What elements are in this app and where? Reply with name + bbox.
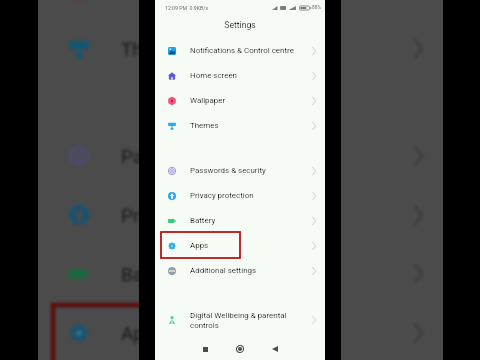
button[interactable]: Apps — [155, 233, 325, 258]
button[interactable]: Privacy protection — [155, 183, 325, 208]
button[interactable]: Themes — [38, 19, 443, 78]
staticText: Wallpaper — [190, 96, 226, 105]
button[interactable]: Digital Wellbeing & parental controls — [155, 304, 325, 336]
staticText: 88% — [312, 5, 321, 11]
button[interactable]: Battery — [38, 244, 443, 303]
staticText: Themes — [121, 38, 190, 60]
button[interactable]: Home screen — [155, 63, 325, 88]
button[interactable]: Passwords & security — [155, 158, 325, 183]
staticText: Additional settings — [190, 266, 257, 275]
staticText: Apps — [121, 322, 165, 344]
button[interactable]: Wallpaper — [38, 0, 443, 19]
staticText: Wallpaper — [121, 0, 205, 1]
button[interactable]: Notifications & Control centre — [155, 38, 325, 63]
staticText: Notifications & Control centre — [190, 46, 294, 55]
button[interactable]: Back — [266, 340, 284, 358]
staticText: Themes — [190, 121, 219, 130]
staticText: Privacy protection — [190, 191, 254, 200]
button[interactable]: Apps — [38, 303, 443, 360]
button[interactable]: Wallpaper — [155, 88, 325, 113]
staticText: Privacy protection — [121, 204, 273, 226]
staticText: 12:09 PM 0.9KB/s — [165, 5, 209, 11]
staticText: Apps — [190, 241, 209, 250]
staticText: Digital Wellbeing & parental controls — [190, 311, 287, 330]
staticText: Passwords & security — [190, 166, 266, 175]
staticText: Passwords & security — [121, 145, 302, 167]
button[interactable]: Additional settings — [155, 258, 325, 283]
button[interactable]: Battery — [155, 208, 325, 233]
button[interactable]: Privacy protection — [38, 185, 443, 244]
button[interactable]: Themes — [155, 113, 325, 138]
staticText: Battery — [190, 216, 216, 225]
button[interactable]: Home — [231, 340, 249, 358]
button[interactable]: Passwords & security — [38, 126, 443, 185]
staticText: Battery — [121, 263, 181, 285]
button[interactable]: Recents — [196, 340, 214, 358]
staticText: Settings — [224, 20, 256, 30]
staticText: Home screen — [190, 71, 237, 80]
